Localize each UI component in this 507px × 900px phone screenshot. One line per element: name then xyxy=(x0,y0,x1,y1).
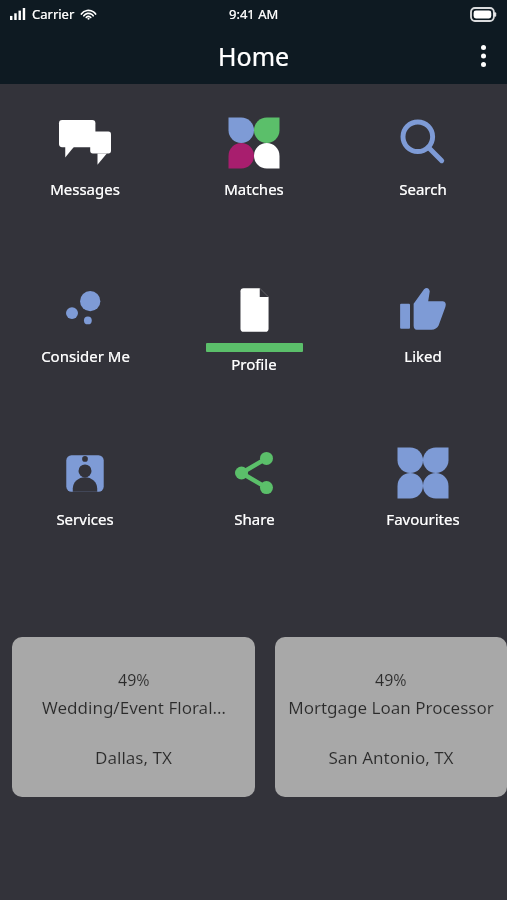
other: Matches xyxy=(228,117,280,169)
button[interactable]: More options xyxy=(459,32,507,80)
staticText: 9:41 AM xyxy=(229,5,279,23)
staticText: Share xyxy=(234,509,275,529)
staticText: 49% xyxy=(375,669,407,691)
staticText: Consider Me xyxy=(41,346,130,366)
other: Consider Me xyxy=(59,284,111,336)
staticText: Liked xyxy=(404,346,442,366)
button[interactable]: 49% xyxy=(12,637,255,797)
staticText: Home xyxy=(218,39,290,73)
staticText: Dallas, TX xyxy=(95,746,172,769)
other: Messages xyxy=(59,117,111,169)
button[interactable]: Messages xyxy=(15,112,155,201)
other: Services xyxy=(59,447,111,499)
staticText: Services xyxy=(56,509,114,529)
button[interactable]: Services xyxy=(15,442,155,531)
staticText: Messages xyxy=(50,179,120,199)
staticText: Carrier xyxy=(32,5,75,23)
other: Profile xyxy=(228,284,280,336)
button[interactable]: Favourites xyxy=(353,442,493,531)
staticText: San Antonio, TX xyxy=(328,746,454,769)
other: Favourites xyxy=(397,447,449,499)
staticText: Matches xyxy=(224,179,284,199)
other: Share xyxy=(228,447,280,499)
staticText: Mortgage Loan Processor xyxy=(288,696,494,719)
button[interactable]: Consider Me xyxy=(15,279,155,368)
staticText: Search xyxy=(399,179,447,199)
button[interactable]: 49% xyxy=(275,637,507,797)
staticText: Wedding/Event Floral… xyxy=(42,696,226,719)
staticText: Profile xyxy=(231,354,277,374)
button[interactable]: Matches xyxy=(184,112,324,201)
button[interactable]: Liked xyxy=(353,279,493,368)
other: Liked xyxy=(397,284,449,336)
button[interactable]: Share xyxy=(184,442,324,531)
button[interactable]: Search xyxy=(353,112,493,201)
staticText: 49% xyxy=(118,669,150,691)
button[interactable]: Profile xyxy=(184,279,324,376)
other: Search xyxy=(397,117,449,169)
staticText: Favourites xyxy=(386,509,460,529)
